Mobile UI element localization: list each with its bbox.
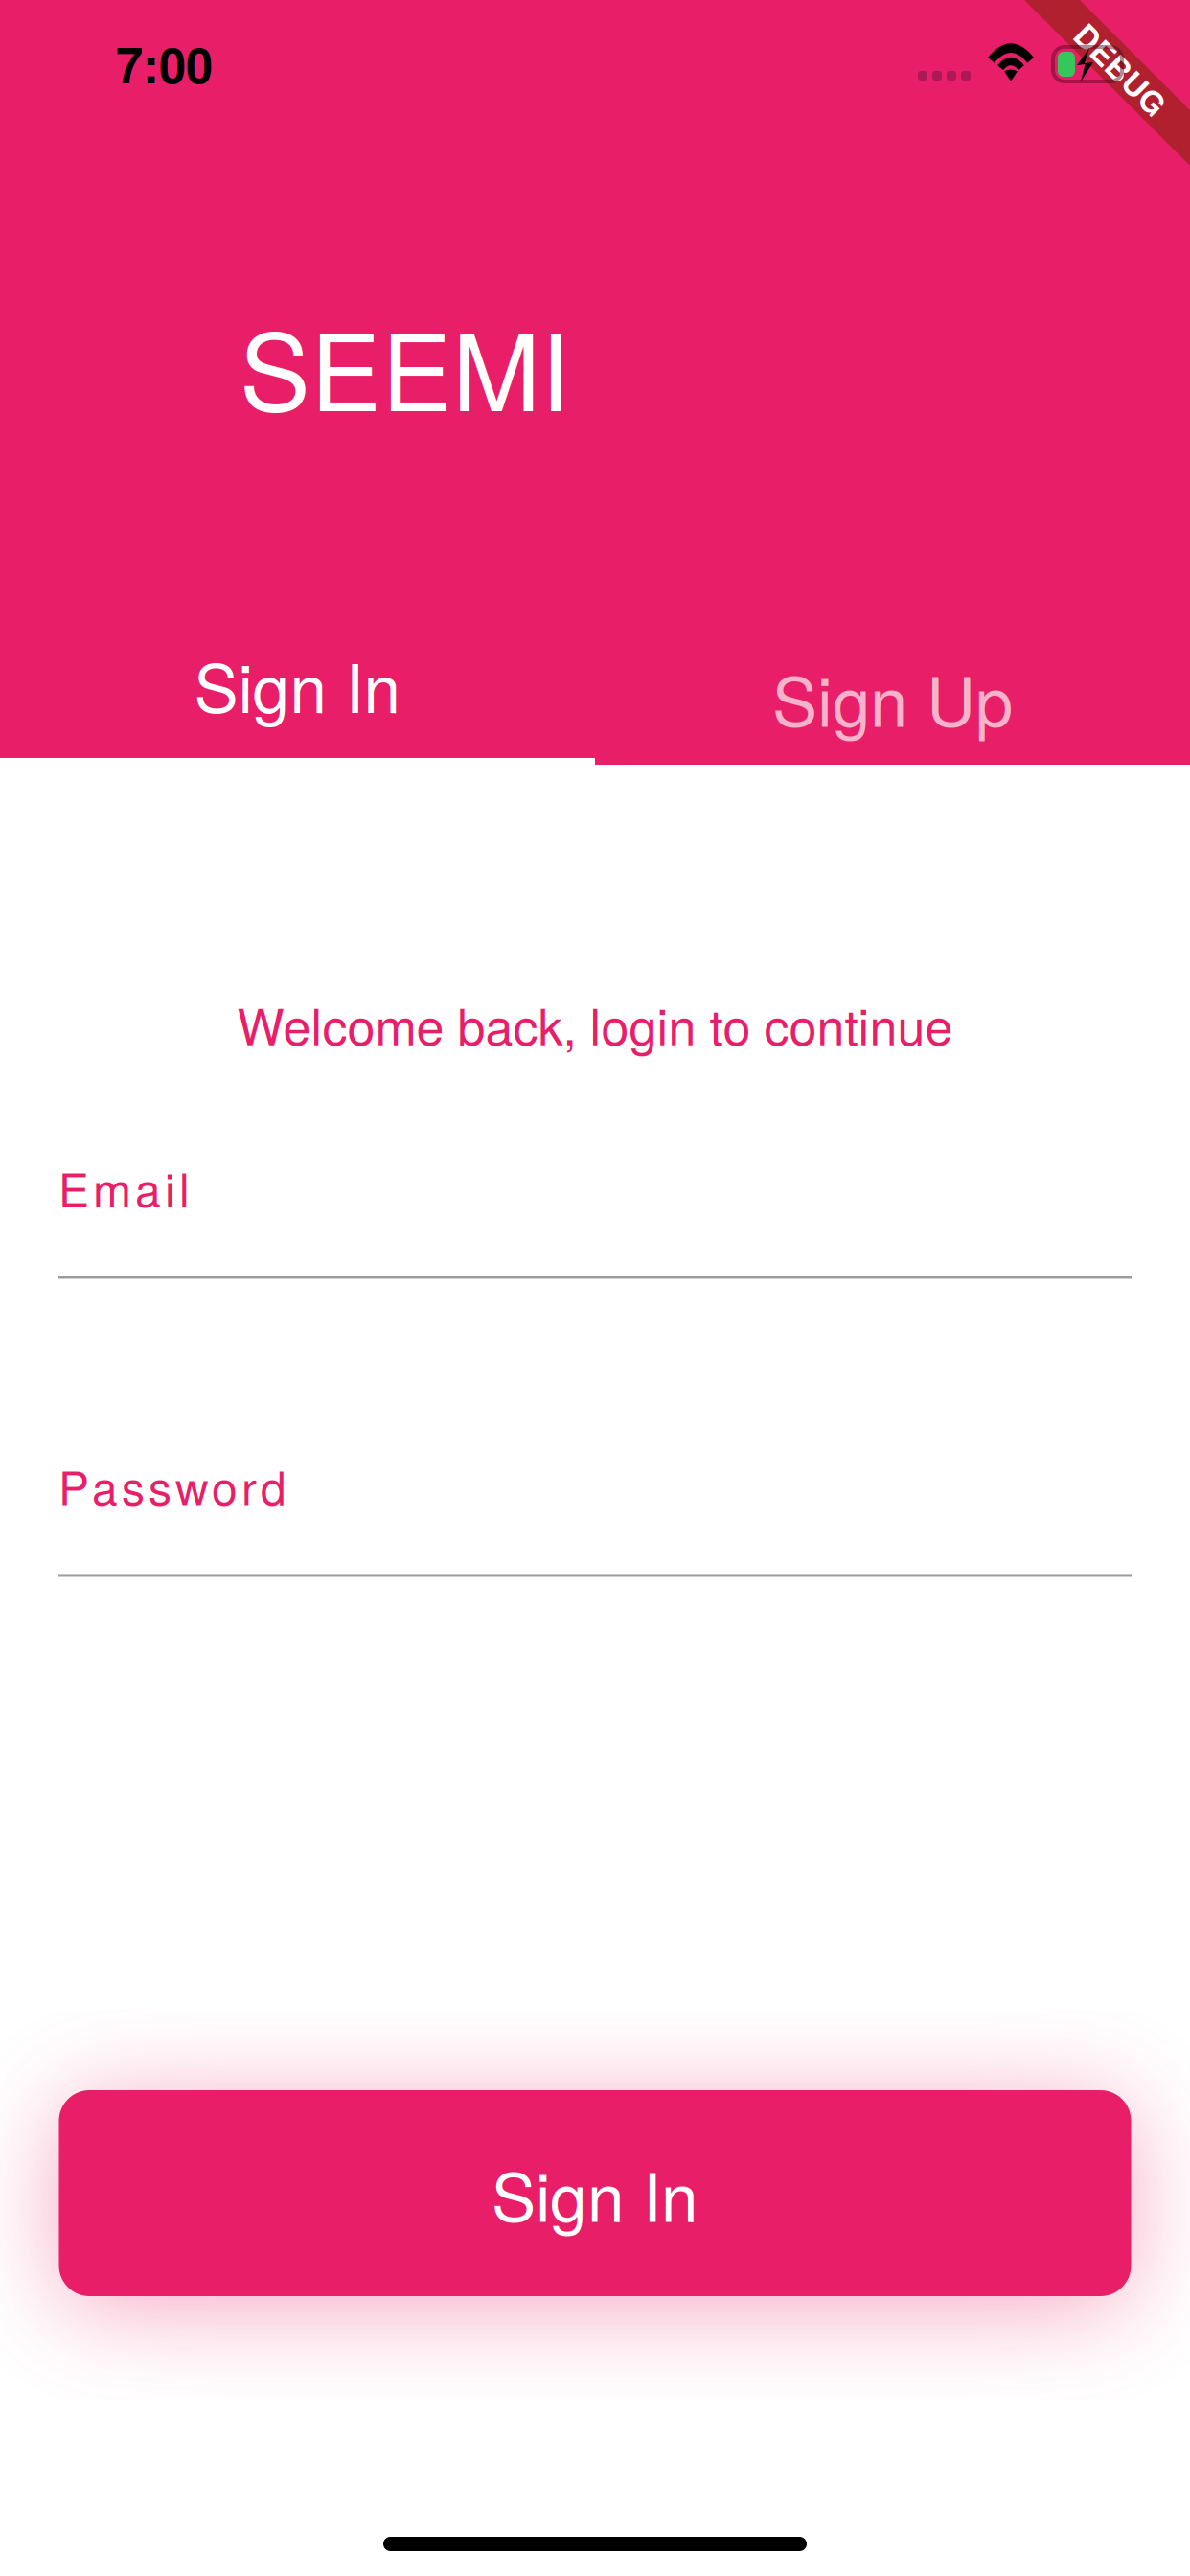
button[interactable]: Sign Up — [595, 621, 1190, 765]
staticText: Email — [58, 1154, 190, 1220]
button[interactable]: Email — [58, 1154, 1132, 1279]
button[interactable]: Sign In — [59, 2090, 1131, 2296]
staticText: DEBUG — [1064, 46, 1179, 92]
staticText: Welcome back, login to continue — [237, 988, 953, 1059]
button[interactable]: Sign In — [0, 621, 595, 765]
button[interactable]: Password — [58, 1452, 1132, 1577]
staticText: Sign Up — [772, 649, 1013, 746]
staticText: Sign In — [492, 2146, 698, 2241]
staticText: Sign In — [194, 637, 401, 732]
staticText: Password — [58, 1452, 286, 1518]
staticText: SEEMI — [240, 289, 570, 441]
staticText: 7:00 — [116, 29, 213, 98]
